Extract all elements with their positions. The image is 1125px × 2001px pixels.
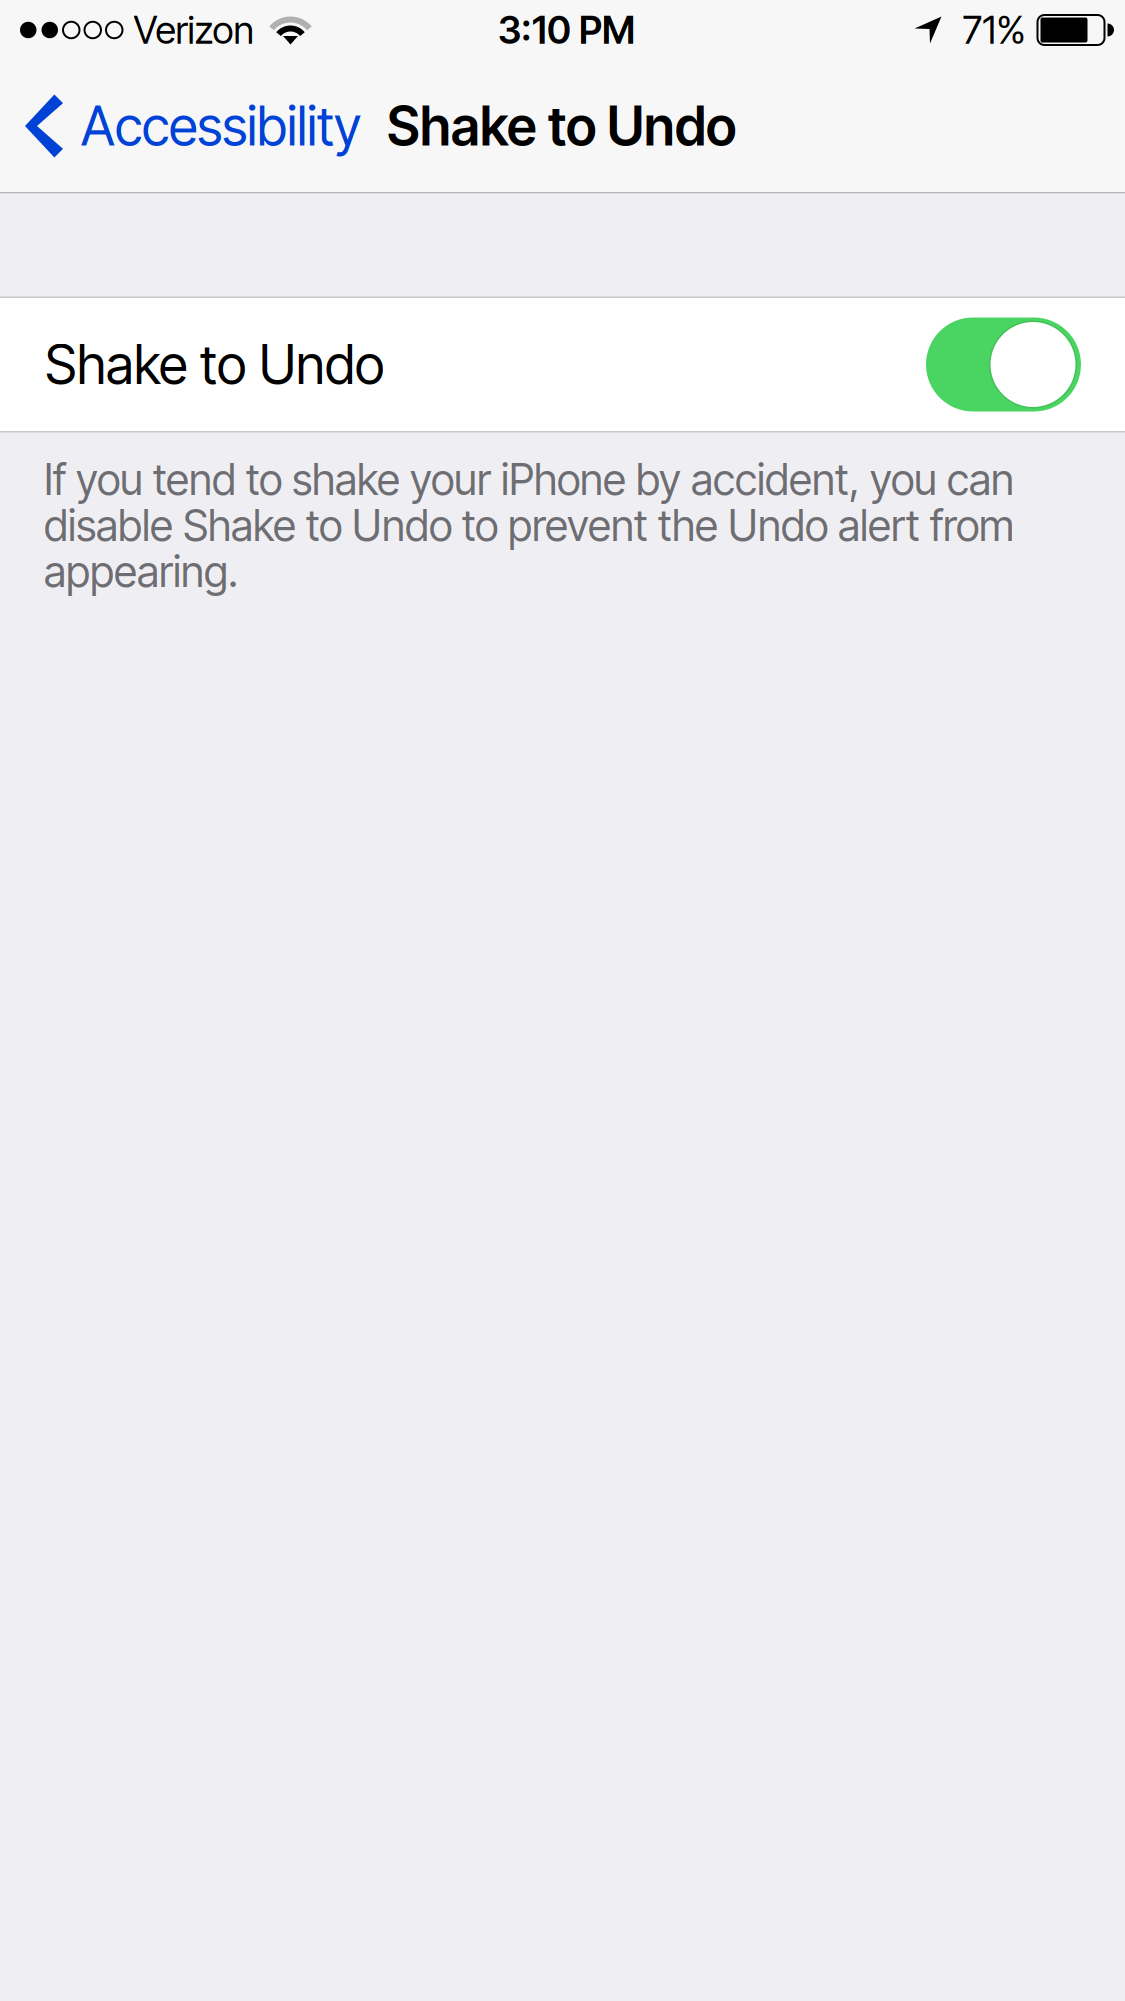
staticText: disable Shake to Undo to prevent the Und… — [44, 500, 1014, 551]
staticText: appearing. — [44, 546, 238, 597]
staticText: 71% — [962, 7, 1025, 53]
button[interactable]: Back to Accessibility — [0, 60, 373, 192]
staticText: Shake to Undo — [387, 94, 736, 158]
staticText: Verizon — [133, 7, 253, 53]
staticText: Shake to Undo — [45, 332, 384, 397]
button[interactable]: Shake to Undo, on — [926, 317, 1081, 411]
staticText: Accessibility — [81, 94, 361, 158]
button[interactable]: Shake to Undo — [0, 298, 1125, 431]
staticText: If you tend to shake your iPhone by acci… — [44, 454, 1014, 505]
staticText: 3:10 PM — [498, 7, 635, 53]
